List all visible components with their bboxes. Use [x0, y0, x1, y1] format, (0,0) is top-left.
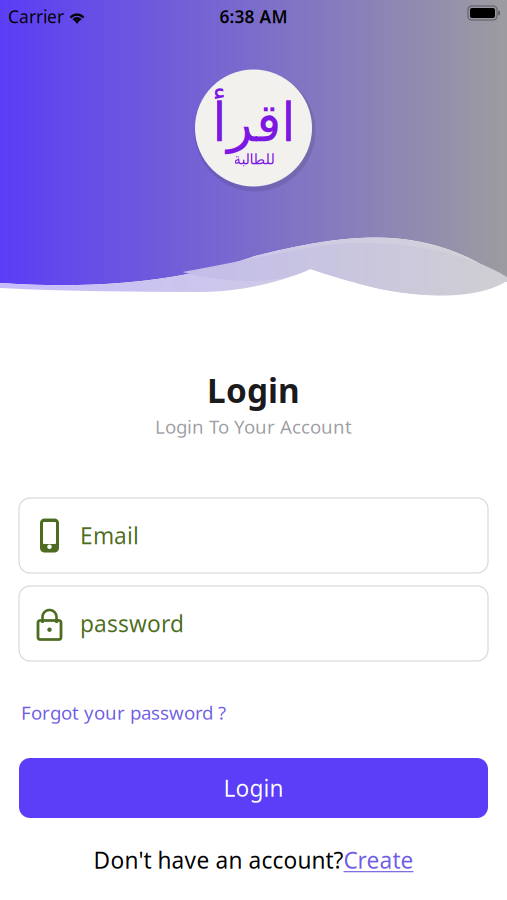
- button[interactable]: Login: [19, 758, 488, 818]
- button[interactable]: Create: [343, 845, 413, 875]
- staticText: Login: [223, 773, 283, 803]
- button[interactable]: password: [19, 586, 488, 661]
- staticText: Email: [80, 520, 139, 550]
- button[interactable]: Forgot your password ?: [21, 700, 226, 725]
- staticText: Create: [343, 845, 413, 875]
- staticText: Login: [207, 368, 300, 412]
- staticText: للطالبة: [233, 151, 274, 167]
- staticText: Forgot your password ?: [21, 700, 226, 725]
- button[interactable]: Email: [19, 498, 488, 573]
- staticText: Carrier: [8, 5, 64, 28]
- staticText: Don't have an account?: [93, 845, 343, 875]
- staticText: 6:38 AM: [219, 5, 287, 28]
- staticText: اقرأ: [211, 92, 295, 153]
- staticText: Login To Your Account: [155, 414, 352, 439]
- staticText: password: [80, 608, 184, 638]
